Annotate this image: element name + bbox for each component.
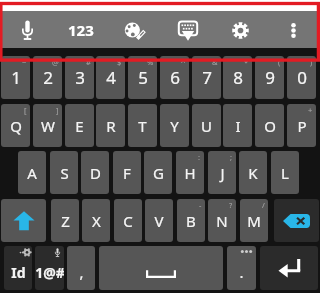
button[interactable]: V [145,199,173,242]
staticText: 3 [75,66,85,89]
button[interactable]: Space [99,246,223,290]
staticText: P [297,116,307,136]
button[interactable]: I [223,104,252,147]
staticText: 2 [43,66,53,89]
button[interactable]: W [33,104,62,147]
button[interactable]: Voice input [0,11,54,49]
staticText: B [186,211,196,231]
staticText: 4 [106,66,116,89]
button[interactable]: Enter [260,246,318,290]
button[interactable]: Backspace [274,199,319,242]
staticText: T [138,116,147,136]
button[interactable]: U [192,104,221,147]
staticText: / [262,200,265,210]
staticText: D [90,163,101,183]
staticText: E [75,116,84,136]
button[interactable]: , [67,246,95,290]
button[interactable]: 4 [96,56,125,99]
staticText: G [153,163,164,183]
button[interactable]: G [144,151,172,194]
button[interactable]: . [227,246,256,290]
button[interactable]: L [271,151,299,194]
button[interactable]: E [65,104,94,147]
staticText: X [92,211,101,231]
staticText: A [27,163,37,183]
button[interactable]: N [208,199,236,242]
staticText: V [154,211,164,231]
staticText: & [212,57,218,67]
button[interactable]: Hide keyboard [161,11,214,49]
staticText: ; [230,152,233,162]
staticText: N [216,211,228,231]
staticText: 8 [233,66,243,89]
staticText: I [235,116,241,136]
button[interactable]: X [82,199,110,242]
staticText: M [247,211,261,231]
button[interactable]: 3 [65,56,94,99]
staticText: 5 [138,66,148,89]
button[interactable]: Settings [214,11,267,49]
button[interactable]: 0 [287,56,316,99]
button[interactable]: Numbers [54,11,108,49]
staticText: # [86,57,91,67]
staticText: ~ [22,57,27,67]
staticText: 6 [170,66,180,89]
staticText: H [184,163,196,183]
button[interactable]: D [81,151,109,194]
button[interactable]: A [18,151,46,194]
button[interactable]: Language [4,246,32,290]
button[interactable]: Y [160,104,189,147]
button[interactable]: Theme [108,11,161,49]
button[interactable]: K [239,151,267,194]
button[interactable]: S [50,151,78,194]
button[interactable]: J [208,151,236,194]
button[interactable]: P [287,104,316,147]
button[interactable]: 6 [160,56,189,99]
button[interactable]: M [240,199,268,242]
staticText: L [281,163,289,183]
button[interactable]: Q [1,104,30,147]
staticText: [ [24,105,27,115]
staticText: U [201,116,212,136]
button[interactable]: Symbols [35,246,64,290]
button[interactable]: More options [267,11,320,49]
staticText: K [248,163,258,183]
button[interactable]: O [255,104,284,147]
staticText: ) [310,57,313,67]
button[interactable]: C [114,199,142,242]
staticText: ? [229,200,233,210]
button[interactable]: 8 [223,56,252,99]
staticText: 0 [297,66,307,89]
button[interactable]: 9 [255,56,284,99]
staticText: : [198,152,201,162]
staticText: J [220,163,225,183]
button[interactable]: 1 [1,56,30,99]
button[interactable]: 2 [33,56,62,99]
staticText: C [123,211,133,231]
button[interactable]: B [177,199,205,242]
staticText: ( [278,57,281,67]
staticText: O [264,116,276,136]
staticText: 7 [202,66,212,89]
staticText: * [244,57,249,67]
button[interactable]: 5 [128,56,157,99]
button[interactable]: Shift [1,199,46,242]
staticText: Y [170,116,179,136]
staticText: 1 [11,66,21,89]
button[interactable]: Z [51,199,79,242]
staticText: ] [56,105,59,115]
staticText: 123 [68,20,94,40]
button[interactable]: 7 [192,56,221,99]
staticText: Z [61,211,70,231]
staticText: 9 [265,66,275,89]
button[interactable]: T [128,104,157,147]
staticText: @ [52,57,59,67]
staticText: W [41,116,55,136]
button[interactable]: R [96,104,125,147]
staticText: . [239,262,244,282]
staticText: % [147,57,154,67]
button[interactable]: F [113,151,141,194]
staticText: 1@# [35,263,64,282]
staticText: F [123,163,131,183]
button[interactable]: H [176,151,204,194]
